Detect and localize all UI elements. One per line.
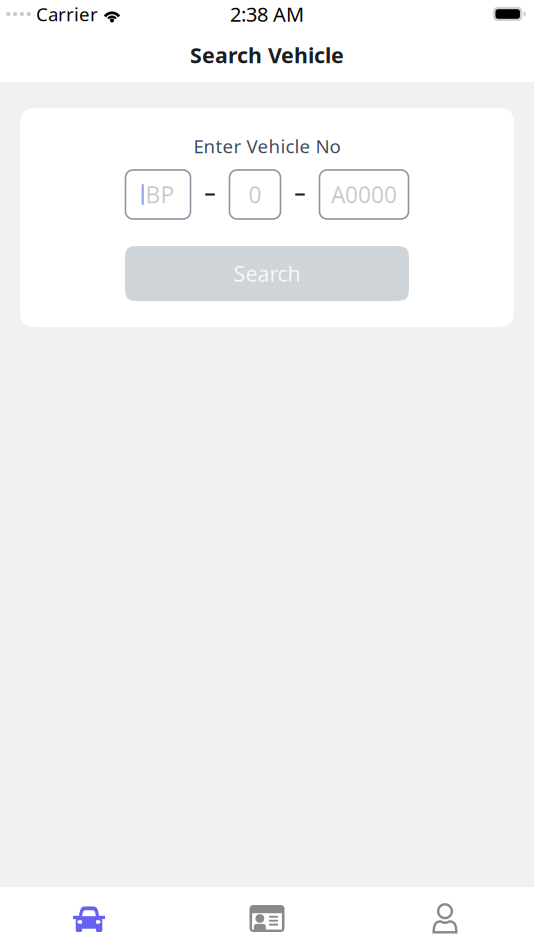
staticText: Enter Vehicle No xyxy=(193,134,340,158)
staticText: Search xyxy=(233,259,300,288)
staticText: Search Vehicle xyxy=(190,41,344,69)
button[interactable]: Permits xyxy=(178,887,356,950)
staticText: BP xyxy=(145,179,174,209)
button[interactable]: Vehicles xyxy=(0,887,178,950)
staticText: A0000 xyxy=(331,179,397,209)
staticText: 0 xyxy=(248,179,261,209)
button[interactable]: Search xyxy=(125,246,409,301)
button[interactable]: Profile xyxy=(356,887,534,950)
staticText: 2:38 AM xyxy=(230,1,304,27)
staticText: Carrier xyxy=(36,2,98,26)
